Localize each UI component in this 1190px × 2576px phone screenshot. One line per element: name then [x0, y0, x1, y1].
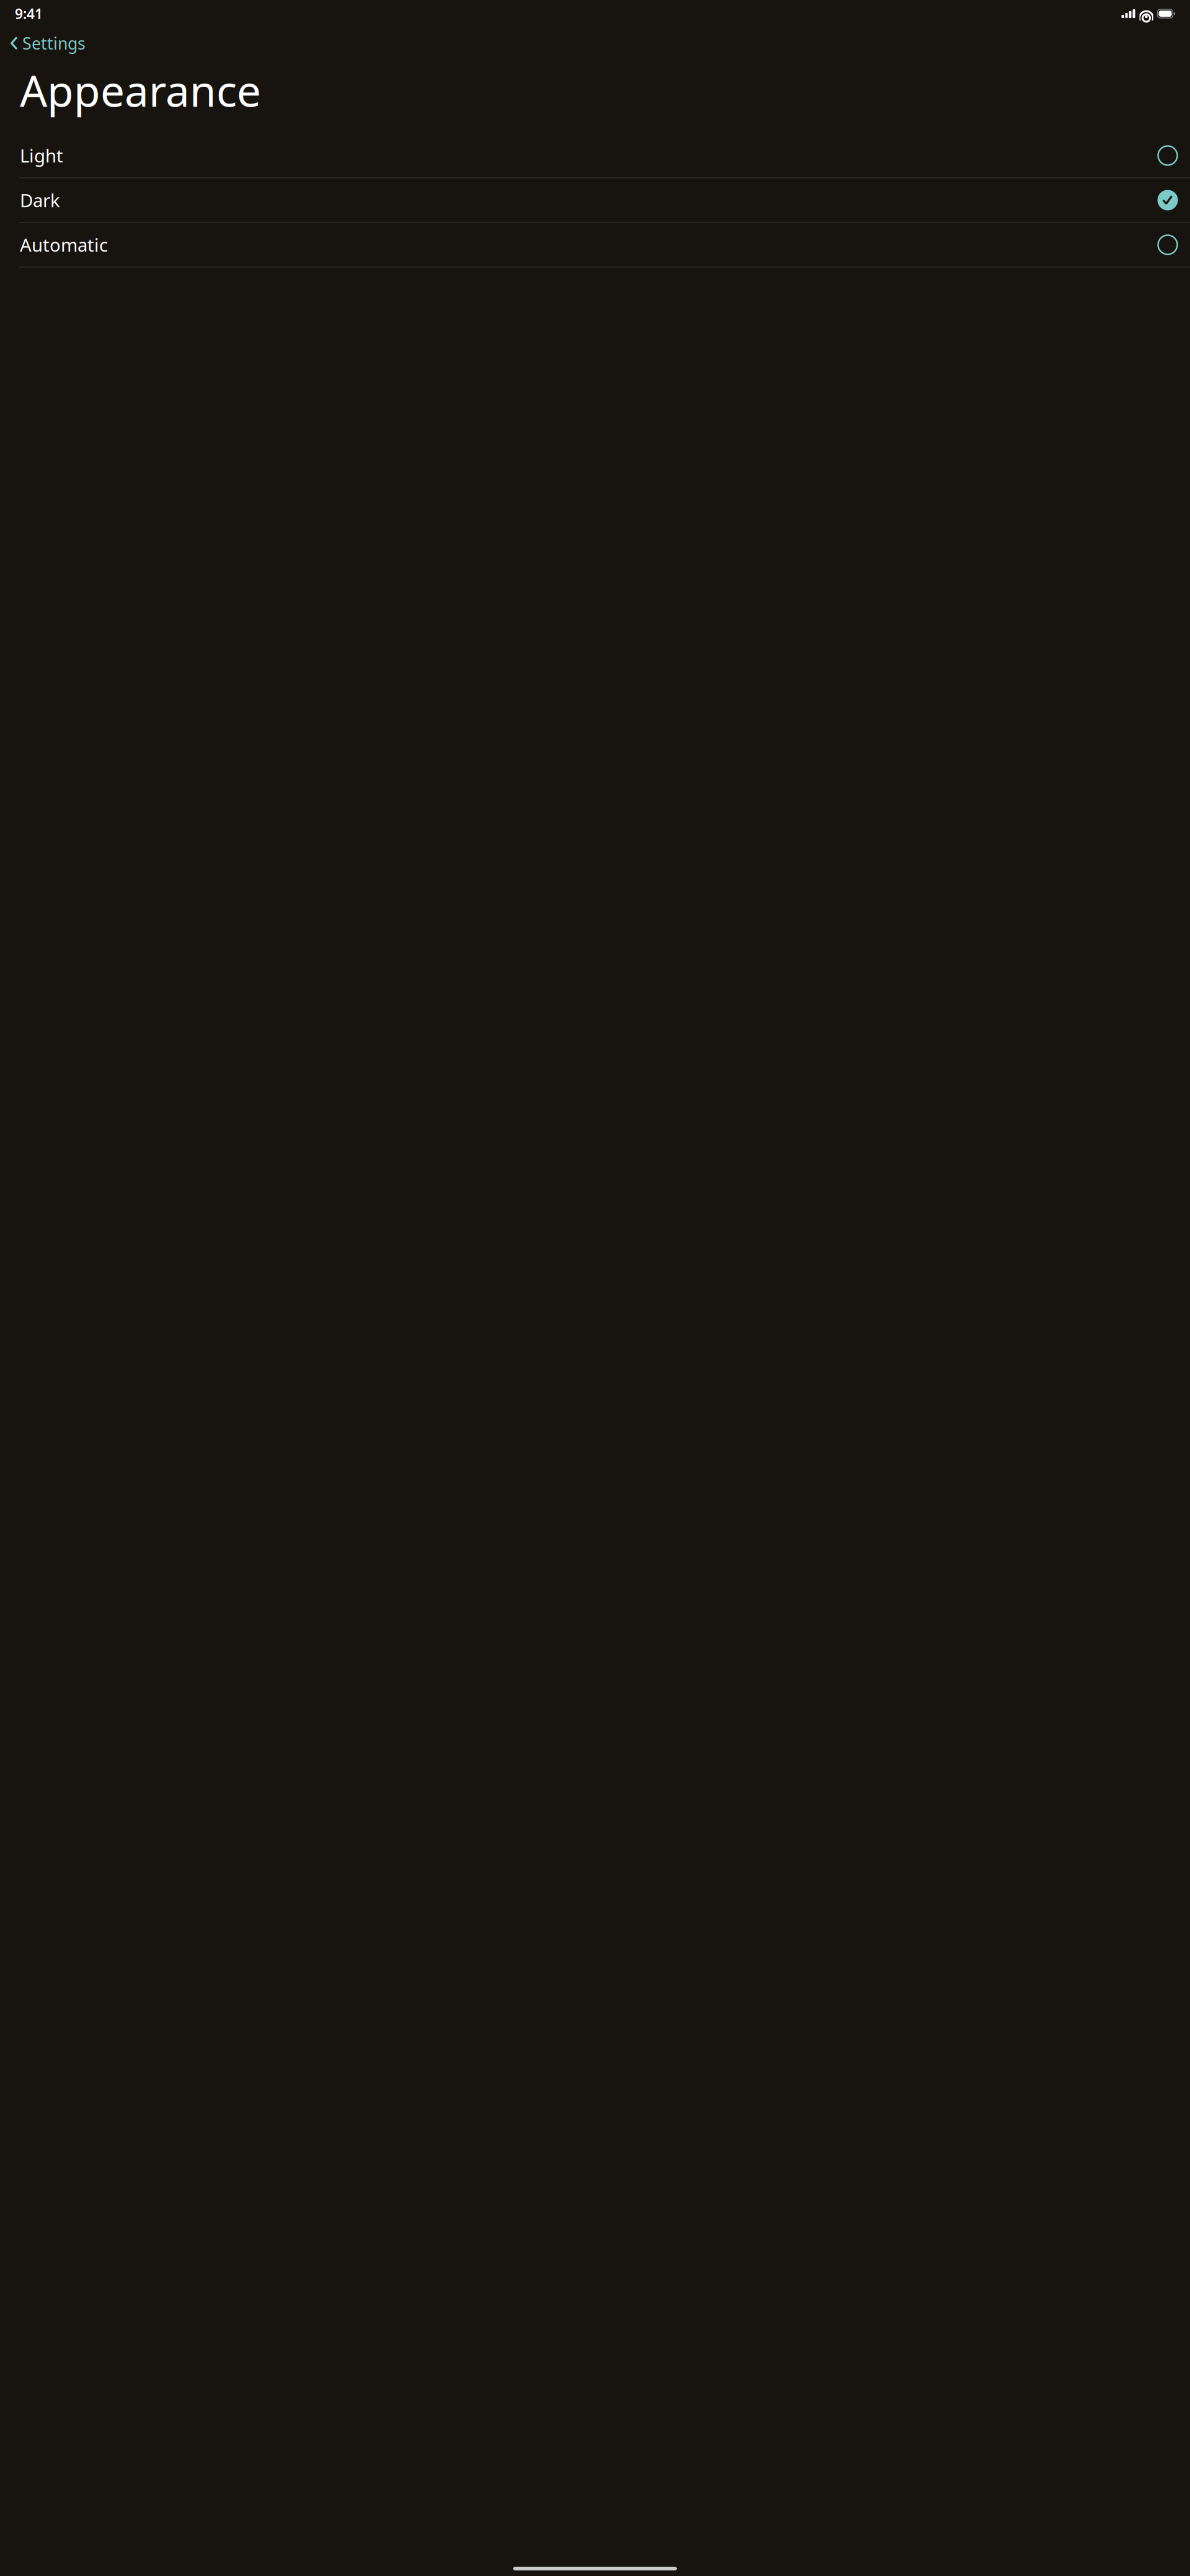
staticText: Dark: [20, 188, 60, 212]
staticText: Automatic: [20, 233, 108, 257]
staticText: Light: [20, 143, 63, 168]
button[interactable]: Automatic: [0, 223, 1190, 267]
staticText: 9:41: [15, 4, 43, 23]
staticText: Appearance: [20, 62, 261, 119]
button[interactable]: Light: [0, 134, 1190, 178]
staticText: Settings: [22, 32, 86, 54]
button[interactable]: Dark: [0, 178, 1190, 223]
button[interactable]: Settings: [0, 29, 94, 58]
